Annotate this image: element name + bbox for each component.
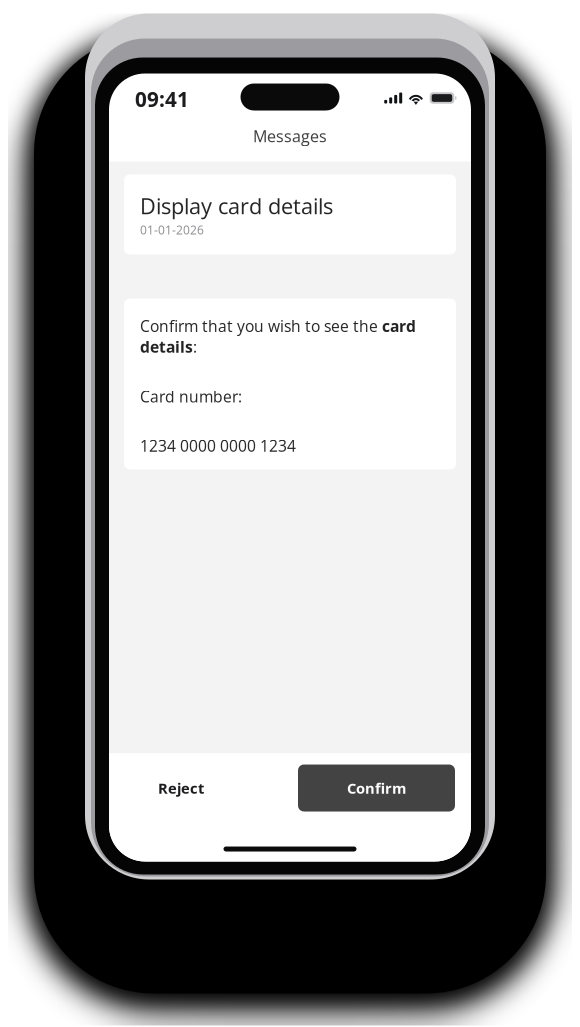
staticText: Reject — [158, 778, 204, 798]
button[interactable]: Reject — [133, 764, 229, 811]
staticText: 09:41 — [135, 85, 189, 113]
staticText: Card number: — [140, 386, 242, 407]
staticText: Confirm that you wish to see the card de… — [140, 315, 416, 357]
staticText: 1234 0000 0000 1234 — [140, 435, 296, 456]
staticText: 01-01-2026 — [140, 222, 204, 238]
staticText: Confirm — [347, 778, 406, 798]
staticText: Display card details — [140, 191, 333, 221]
staticText: Messages — [253, 125, 327, 147]
button[interactable]: Confirm — [298, 764, 455, 811]
